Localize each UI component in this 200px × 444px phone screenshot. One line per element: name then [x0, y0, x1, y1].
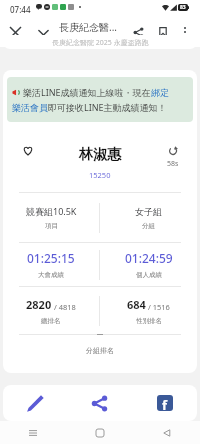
button[interactable]: Edit	[3, 385, 67, 421]
staticText: f	[162, 396, 168, 411]
staticText: 樂活會員	[12, 102, 48, 113]
staticText: 長庚紀念醫院 2025 永慶盃路跑	[52, 38, 149, 48]
button[interactable]: Share	[125, 19, 151, 45]
staticText: 性別排名	[136, 317, 162, 325]
staticText: 總排名	[41, 317, 61, 325]
staticText: / 4818	[52, 302, 76, 312]
staticText: 綁定	[151, 87, 169, 98]
button[interactable]: Back	[158, 424, 176, 442]
staticText: 分組排名	[86, 346, 114, 355]
button[interactable]: Recents	[24, 424, 42, 442]
staticText: 樂活LINE成績通知上線啦・現在	[23, 86, 151, 98]
button[interactable]: Bookmark	[151, 20, 174, 43]
staticText: 15250	[89, 170, 111, 180]
staticText: 分組	[142, 222, 155, 230]
button[interactable]: Share	[67, 385, 132, 421]
staticText: 即可接收LINE主動成績通知！	[48, 101, 167, 113]
staticText: / 1516	[146, 302, 170, 312]
staticText: lohasnet.tw	[65, 35, 101, 44]
staticText: 林淑惠	[79, 146, 121, 164]
staticText: 大會成績	[38, 271, 64, 279]
button[interactable]: Refresh	[162, 146, 184, 169]
staticText: 83	[180, 4, 186, 11]
staticText: 個人成績	[136, 271, 162, 279]
staticText: 女子組	[135, 206, 162, 217]
button[interactable]: Facebook	[132, 385, 197, 421]
button[interactable]: Close	[0, 17, 30, 47]
button[interactable]: More options	[174, 21, 196, 43]
staticText: 競賽組10.5K	[26, 205, 77, 217]
staticText: 01:25:15	[27, 250, 75, 266]
button[interactable]: Expand	[30, 19, 56, 45]
staticText: 01:24:59	[125, 250, 173, 266]
staticText: 2820	[26, 297, 52, 312]
button[interactable]: 樂活LINE成績通知上線啦・現在	[7, 77, 193, 122]
staticText: 684	[127, 297, 146, 312]
button[interactable]: Home	[91, 424, 109, 442]
staticText: 07:44	[10, 4, 31, 15]
button[interactable]: Favorite	[19, 142, 37, 160]
staticText: 項目	[45, 222, 58, 230]
staticText: 58s	[167, 159, 179, 169]
staticText: 長庚紀念醫...	[59, 20, 118, 34]
